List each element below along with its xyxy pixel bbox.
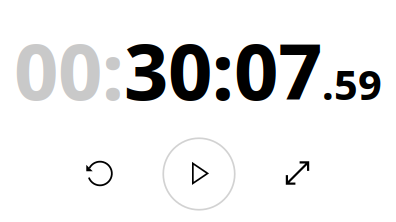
staticText: .59 <box>322 56 382 112</box>
staticText: 00: <box>14 17 124 123</box>
staticText: 30:07 <box>124 17 322 123</box>
button[interactable]: Reset <box>76 149 124 197</box>
button[interactable]: Start <box>163 138 235 210</box>
button[interactable]: Full screen <box>273 149 321 197</box>
